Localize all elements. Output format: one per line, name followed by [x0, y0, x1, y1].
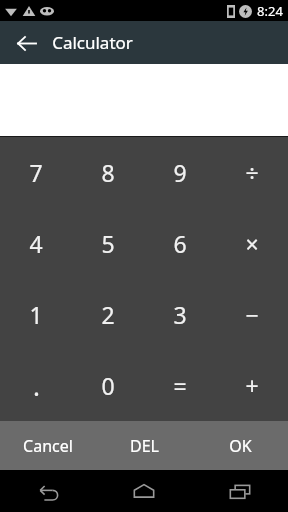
staticText: 0 — [101, 370, 115, 401]
staticText: ÷ — [245, 157, 259, 188]
button[interactable]: − — [216, 279, 288, 350]
staticText: 4 — [29, 228, 43, 259]
button[interactable]: Back — [8, 25, 44, 61]
staticText: . — [33, 368, 40, 403]
staticText: 8:24 — [257, 2, 283, 20]
button[interactable]: OK — [192, 421, 288, 470]
button[interactable]: . — [0, 350, 72, 421]
staticText: 3 — [173, 299, 187, 330]
button[interactable]: 0 — [72, 350, 144, 421]
staticText: Cancel — [23, 435, 73, 457]
button[interactable]: 9 — [144, 137, 216, 208]
button[interactable]: × — [216, 208, 288, 279]
button[interactable]: Recent apps — [192, 470, 288, 512]
staticText: 8 — [101, 157, 115, 188]
button[interactable]: Cancel — [0, 421, 96, 470]
staticText: = — [173, 370, 187, 401]
button[interactable]: 4 — [0, 208, 72, 279]
staticText: 5 — [101, 228, 115, 259]
button[interactable]: DEL — [96, 421, 192, 470]
button[interactable]: 5 — [72, 208, 144, 279]
staticText: DEL — [130, 435, 159, 457]
staticText: + — [245, 370, 259, 401]
button[interactable]: Back — [0, 470, 96, 512]
button[interactable]: 6 — [144, 208, 216, 279]
button[interactable]: Home — [96, 470, 192, 512]
staticText: Calculator — [52, 31, 133, 54]
staticText: × — [245, 228, 259, 259]
button[interactable]: + — [216, 350, 288, 421]
staticText: 1 — [29, 299, 43, 330]
staticText: 9 — [173, 157, 187, 188]
staticText: 6 — [173, 228, 187, 259]
button[interactable]: 1 — [0, 279, 72, 350]
button[interactable]: 2 — [72, 279, 144, 350]
button[interactable]: ÷ — [216, 137, 288, 208]
staticText: OK — [229, 435, 252, 457]
button[interactable]: 3 — [144, 279, 216, 350]
button[interactable]: 8 — [72, 137, 144, 208]
button[interactable]: = — [144, 350, 216, 421]
staticText: 2 — [101, 299, 115, 330]
staticText: 7 — [29, 157, 43, 188]
button[interactable]: 7 — [0, 137, 72, 208]
staticText: − — [245, 299, 259, 330]
